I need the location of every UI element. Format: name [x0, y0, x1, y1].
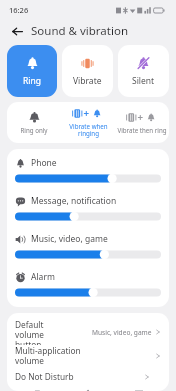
button[interactable]: Vibrate then ring [115, 111, 169, 134]
button[interactable]: Multi-application volume adjustment [7, 345, 169, 366]
button[interactable]: Back [8, 22, 26, 40]
staticText: Music, video, game [31, 233, 108, 245]
staticText: Vibrate [73, 75, 102, 87]
button[interactable]: Music, video, game volume [15, 249, 161, 260]
staticText: Default volume button control [15, 319, 53, 345]
staticText: Ring [23, 75, 41, 87]
staticText: Sound & vibration [31, 23, 128, 39]
staticText: Vibrate when ringing [69, 122, 108, 138]
staticText: Silent [132, 75, 155, 87]
staticText: Vibrate then ring [117, 126, 167, 134]
button[interactable]: Ring only [7, 111, 61, 134]
staticText: 16:26 [9, 5, 29, 15]
button[interactable]: Alarm volume [15, 287, 161, 298]
staticText: Ring only [20, 126, 48, 134]
staticText: Message, notification [31, 195, 117, 207]
button[interactable]: Vibrate [62, 45, 113, 97]
staticText: Phone [31, 157, 57, 169]
button[interactable]: Message, notification volume [15, 211, 161, 222]
button[interactable]: Vibrate when ringing [61, 107, 115, 138]
staticText: Do Not Disturb [15, 371, 74, 382]
button[interactable]: Do Not Disturb [7, 366, 169, 387]
staticText: Multi-application volume adjustment [15, 345, 85, 366]
button[interactable]: Default volume button control [7, 319, 169, 345]
button[interactable]: Phone volume [15, 173, 161, 184]
staticText: Alarm [31, 271, 55, 283]
staticText: Music, video, game [92, 328, 152, 337]
button[interactable]: Ring [7, 45, 57, 97]
button[interactable]: Silent [118, 45, 169, 97]
